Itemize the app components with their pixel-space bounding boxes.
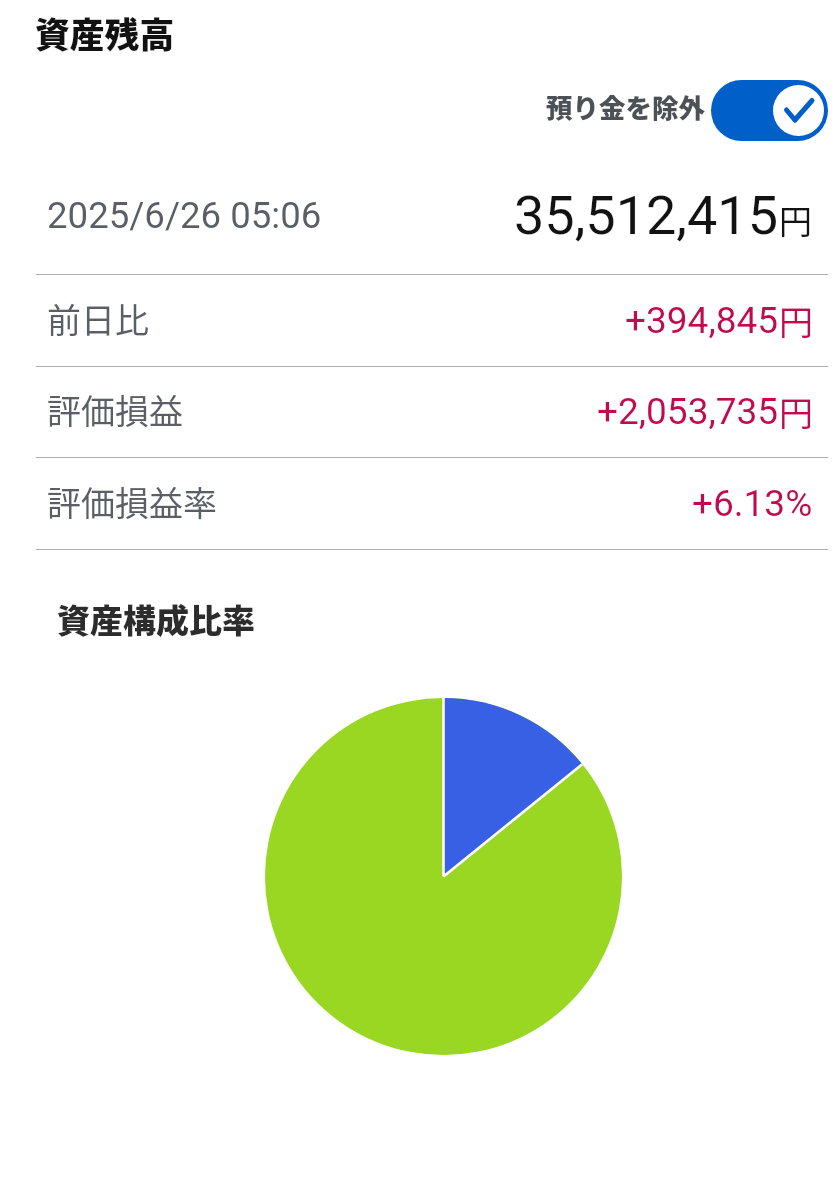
staticText: 2025/6/26 05:06: [47, 194, 322, 237]
button[interactable]: 評価損益: [0, 366, 840, 457]
staticText: 前日比: [47, 294, 149, 343]
staticText: +6.13%: [692, 482, 813, 525]
staticText: 円: [779, 387, 813, 436]
button[interactable]: 預り金を除外: [0, 72, 828, 148]
other: 資産構成比率 円グラフ: [265, 698, 622, 1055]
staticText: 資産残高: [35, 8, 175, 58]
staticText: 35,512,415: [514, 184, 779, 247]
staticText: 評価損益率: [47, 477, 217, 526]
staticText: 円: [779, 296, 813, 345]
button[interactable]: 前日比: [0, 274, 840, 366]
staticText: +2,053,735: [597, 390, 779, 433]
staticText: 円: [779, 196, 812, 244]
staticText: 評価損益: [47, 385, 183, 434]
other: 預り金を除外 トグル: [711, 80, 828, 141]
staticText: 預り金を除外: [546, 87, 705, 125]
button[interactable]: 評価損益率: [0, 457, 840, 549]
staticText: 資産構成比率: [57, 595, 255, 643]
staticText: +394,845: [625, 299, 779, 342]
